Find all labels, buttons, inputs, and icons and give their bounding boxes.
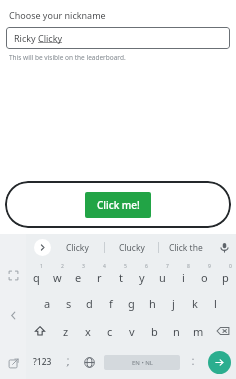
staticText: Ricky Clicky [14,32,63,44]
button[interactable]: g [121,289,142,317]
staticText: Choose your nickname [9,9,106,21]
button[interactable]: s [58,289,79,317]
button[interactable]: 3 [68,261,89,289]
button[interactable]: 5 [110,261,131,289]
staticText: 4 [103,263,106,270]
staticText: EN • NL [132,359,153,367]
button[interactable]: v [121,317,143,345]
staticText: n [173,324,180,339]
button[interactable]: 2 [47,261,68,289]
staticText: e [75,270,82,285]
button[interactable]: 7 [152,261,173,289]
staticText: u [159,270,166,285]
button[interactable]: Open in new window [0,349,26,377]
button[interactable]: EN • NL [104,355,180,370]
button[interactable]: 8 [173,261,194,289]
staticText: l [214,296,217,311]
button[interactable]: h [142,289,163,317]
button[interactable]: 1 [26,261,47,289]
staticText: x [85,324,91,339]
staticText: Click me! [97,198,140,212]
staticText: 2 [61,263,64,270]
button[interactable]: 6 [131,261,152,289]
button[interactable]: Enter [208,351,231,374]
staticText: 6 [145,263,148,270]
staticText: s [66,296,72,311]
button[interactable]: n [165,317,187,345]
button[interactable]: 9 [194,261,215,289]
staticText: Clicky [66,242,89,254]
staticText: m [193,324,204,339]
button[interactable]: Clicky [51,234,104,261]
button[interactable]: ?123 [26,345,58,379]
button[interactable]: a [36,289,58,317]
button[interactable]: m [187,317,209,345]
staticText: This will be visible on the leaderboard. [9,53,126,62]
staticText: a [44,296,51,311]
button[interactable]: d [79,289,100,317]
staticText: w [53,270,62,285]
button[interactable]: k [184,289,205,317]
staticText: 5 [124,263,127,270]
staticText: y [139,270,145,285]
staticText: g [128,296,135,311]
staticText: r [97,270,102,285]
button[interactable]: Period [184,345,202,379]
button[interactable]: 0 [215,261,236,289]
staticText: t [119,270,123,285]
staticText: k [192,296,198,311]
button[interactable]: f [100,289,121,317]
staticText: j [172,296,175,311]
button[interactable]: Clucky [105,234,158,261]
staticText: h [149,296,156,311]
button[interactable]: Ricky Clicky [6,27,230,49]
staticText: o [201,270,208,285]
button[interactable]: j [163,289,184,317]
staticText: v [129,324,135,339]
staticText: p [222,270,229,285]
button[interactable]: z [54,317,77,345]
button[interactable]: Voice input [212,234,236,261]
staticText: 9 [208,263,211,270]
button[interactable]: Back [0,301,26,329]
staticText: 7 [166,263,169,270]
staticText: 0 [229,263,232,270]
button[interactable]: x [77,317,99,345]
button[interactable]: Resize keyboard [0,261,26,289]
staticText: Click the [169,242,203,254]
staticText: c [107,324,113,339]
button[interactable]: Change language [78,345,100,379]
button[interactable]: Backspace [209,317,236,345]
staticText: d [86,296,93,311]
staticText: 1 [40,263,43,270]
button[interactable]: 4 [89,261,110,289]
staticText: Clucky [119,242,145,254]
staticText: z [63,324,69,339]
staticText: 8 [187,263,190,270]
staticText: f [109,296,113,311]
button[interactable]: Click the [159,234,212,261]
button[interactable]: More suggestions [34,239,51,256]
staticText: b [151,324,158,339]
button[interactable]: Comma [58,345,78,379]
button[interactable]: Shift [26,317,54,345]
staticText: i [182,270,185,285]
staticText: ?123 [33,356,52,368]
staticText: 3 [82,263,85,270]
button[interactable]: b [143,317,165,345]
button[interactable]: c [99,317,121,345]
button[interactable]: l [205,289,226,317]
button[interactable]: Click me! [85,192,151,218]
staticText: q [33,270,40,285]
